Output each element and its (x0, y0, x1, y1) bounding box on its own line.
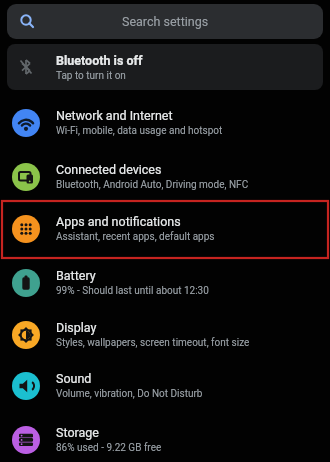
staticText: Apps and notifications (56, 214, 181, 229)
staticText: Styles, wallpapers, screen timeout, font… (56, 337, 250, 349)
staticText: Sound (56, 371, 92, 386)
button[interactable]: Connected devices (0, 150, 330, 203)
staticText: Network and Internet (56, 108, 173, 123)
staticText: Wi-Fi, mobile, data usage and hotspot (56, 125, 223, 137)
button[interactable]: Search settings (7, 4, 323, 39)
staticText: Assistant, recent apps, default apps (56, 231, 215, 243)
staticText: Search settings (122, 14, 209, 29)
staticText: Storage (56, 425, 99, 440)
staticText: Bluetooth, Android Auto, Driving mode, N… (56, 179, 249, 191)
staticText: Volume, vibration, Do Not Disturb (56, 388, 203, 400)
button[interactable]: Sound (0, 359, 330, 412)
button[interactable]: Bluetooth is off (7, 44, 323, 90)
staticText: 86% used - 9.22 GB free (56, 442, 162, 454)
staticText: Tap to turn it on (56, 70, 126, 82)
button[interactable]: Network and Internet (0, 96, 330, 149)
staticText: Bluetooth is off (56, 53, 143, 68)
staticText: Display (56, 320, 97, 335)
button[interactable]: Battery (0, 256, 330, 309)
button[interactable]: Apps and notifications (0, 202, 330, 255)
button[interactable]: Storage (0, 413, 330, 462)
button[interactable]: Display (0, 308, 330, 361)
staticText: Battery (56, 268, 96, 283)
staticText: 99% - Should last until about 12:30 (56, 285, 209, 297)
staticText: Connected devices (56, 162, 162, 177)
